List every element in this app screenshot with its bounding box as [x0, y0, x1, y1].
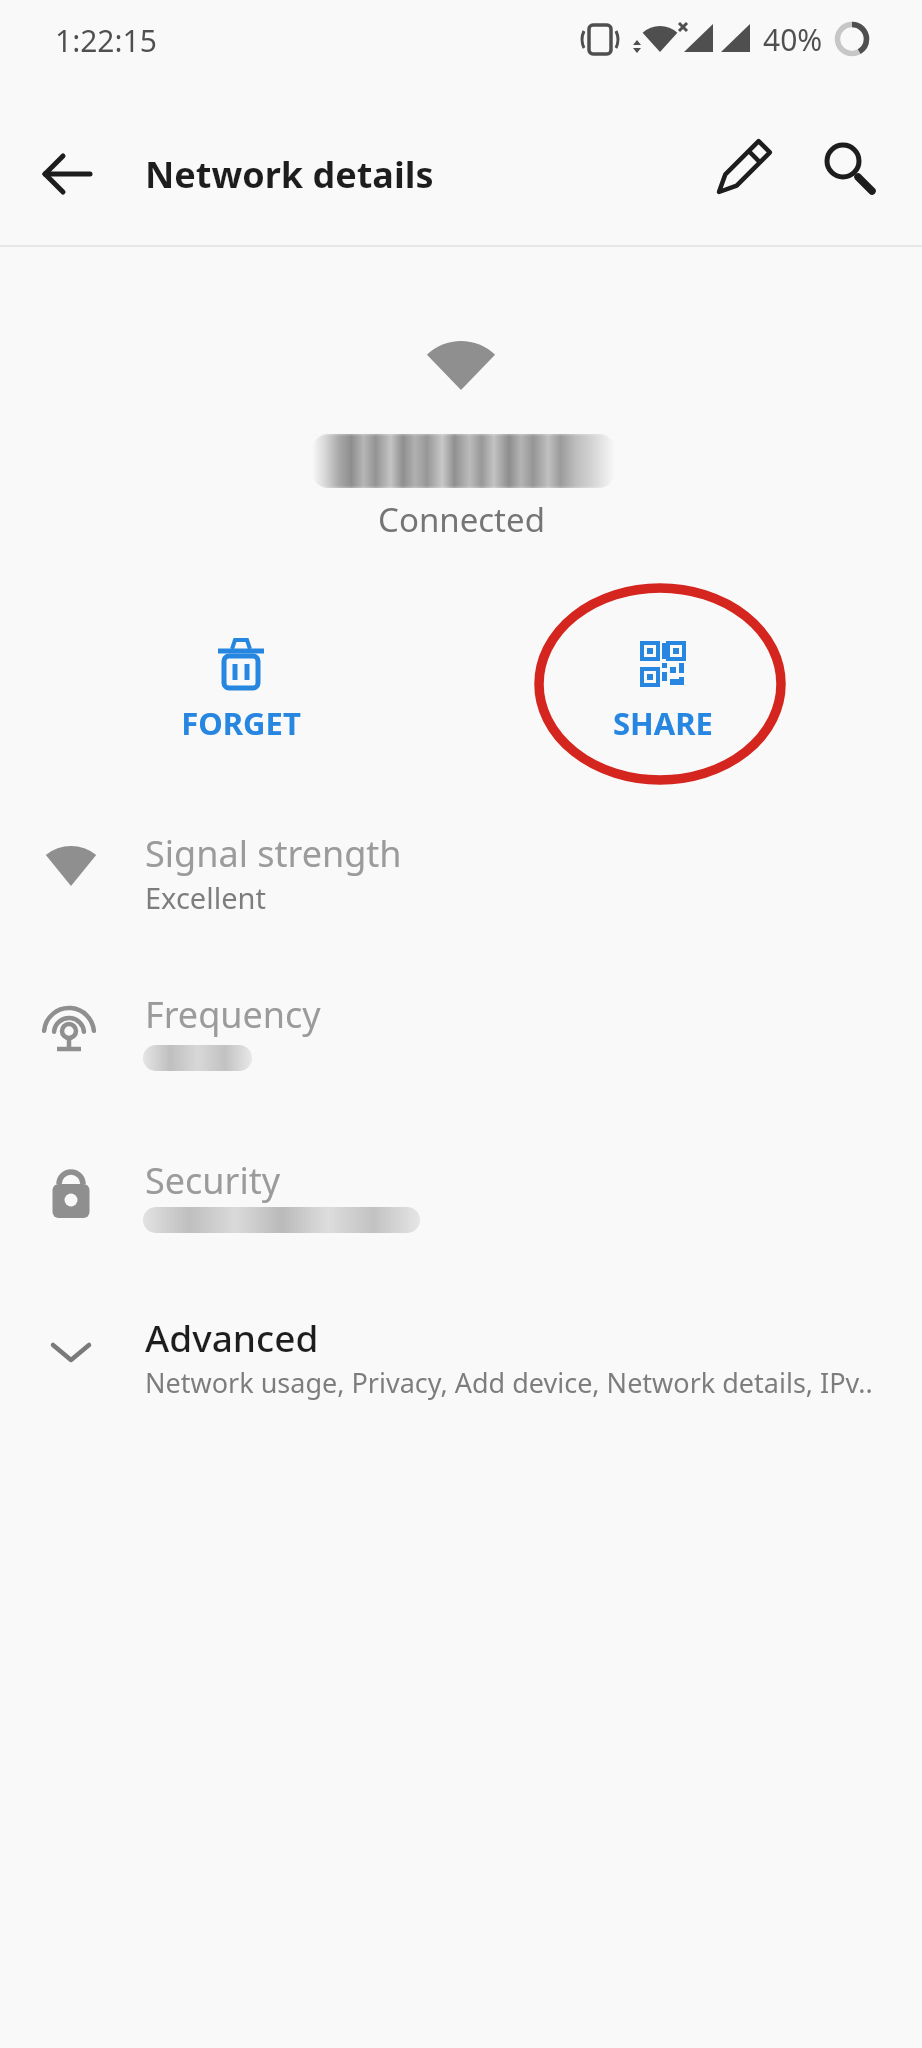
staticText: Network details — [145, 150, 434, 199]
staticText: Advanced — [145, 1312, 319, 1362]
staticText: Connected — [378, 497, 545, 542]
staticText: 1:22:15 — [55, 20, 157, 61]
staticText: SHARE — [613, 702, 713, 742]
staticText: Signal strength — [145, 829, 402, 878]
staticText: 40% — [763, 19, 823, 60]
staticText: Network usage, Privacy, Add device, Netw… — [145, 1364, 873, 1401]
button[interactable]: Advanced — [0, 1300, 922, 1420]
button[interactable] — [31, 138, 103, 210]
button[interactable]: Frequency — [0, 975, 922, 1090]
button[interactable]: SHARE — [572, 615, 754, 765]
button[interactable] — [812, 128, 888, 204]
button[interactable] — [708, 131, 780, 203]
button[interactable]: Signal strength — [0, 815, 922, 930]
staticText: Security — [145, 1156, 281, 1205]
staticText: FORGET — [181, 702, 301, 742]
button[interactable]: Security — [0, 1140, 922, 1255]
button[interactable]: FORGET — [150, 615, 332, 765]
staticText: Frequency — [145, 990, 321, 1039]
staticText: Excellent — [145, 878, 266, 917]
